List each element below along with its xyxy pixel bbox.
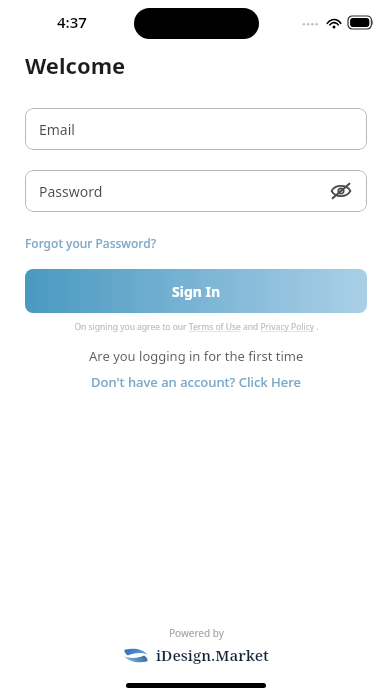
button[interactable]: Sign In bbox=[25, 269, 367, 313]
button[interactable]: Forgot your Password? bbox=[25, 233, 157, 253]
button[interactable]: Show password bbox=[327, 177, 355, 205]
staticText: iDesign.Market bbox=[156, 645, 269, 665]
staticText: Password bbox=[39, 182, 103, 201]
staticText: On signing you agree to our Terms of Use… bbox=[74, 321, 319, 333]
staticText: 4:37 bbox=[57, 12, 87, 32]
staticText: Welcome bbox=[25, 50, 126, 80]
staticText: Forgot your Password? bbox=[25, 235, 157, 251]
staticText: Sign In bbox=[172, 282, 221, 301]
staticText: Are you logging in for the first time bbox=[89, 347, 304, 365]
button[interactable]: Email bbox=[25, 108, 367, 150]
button[interactable]: Password bbox=[25, 170, 367, 212]
staticText: Email bbox=[39, 120, 75, 139]
button[interactable]: Don't have an account? Click Here bbox=[87, 371, 305, 393]
staticText: Don't have an account? Click Here bbox=[91, 373, 301, 391]
staticText: Powered by bbox=[169, 626, 224, 640]
